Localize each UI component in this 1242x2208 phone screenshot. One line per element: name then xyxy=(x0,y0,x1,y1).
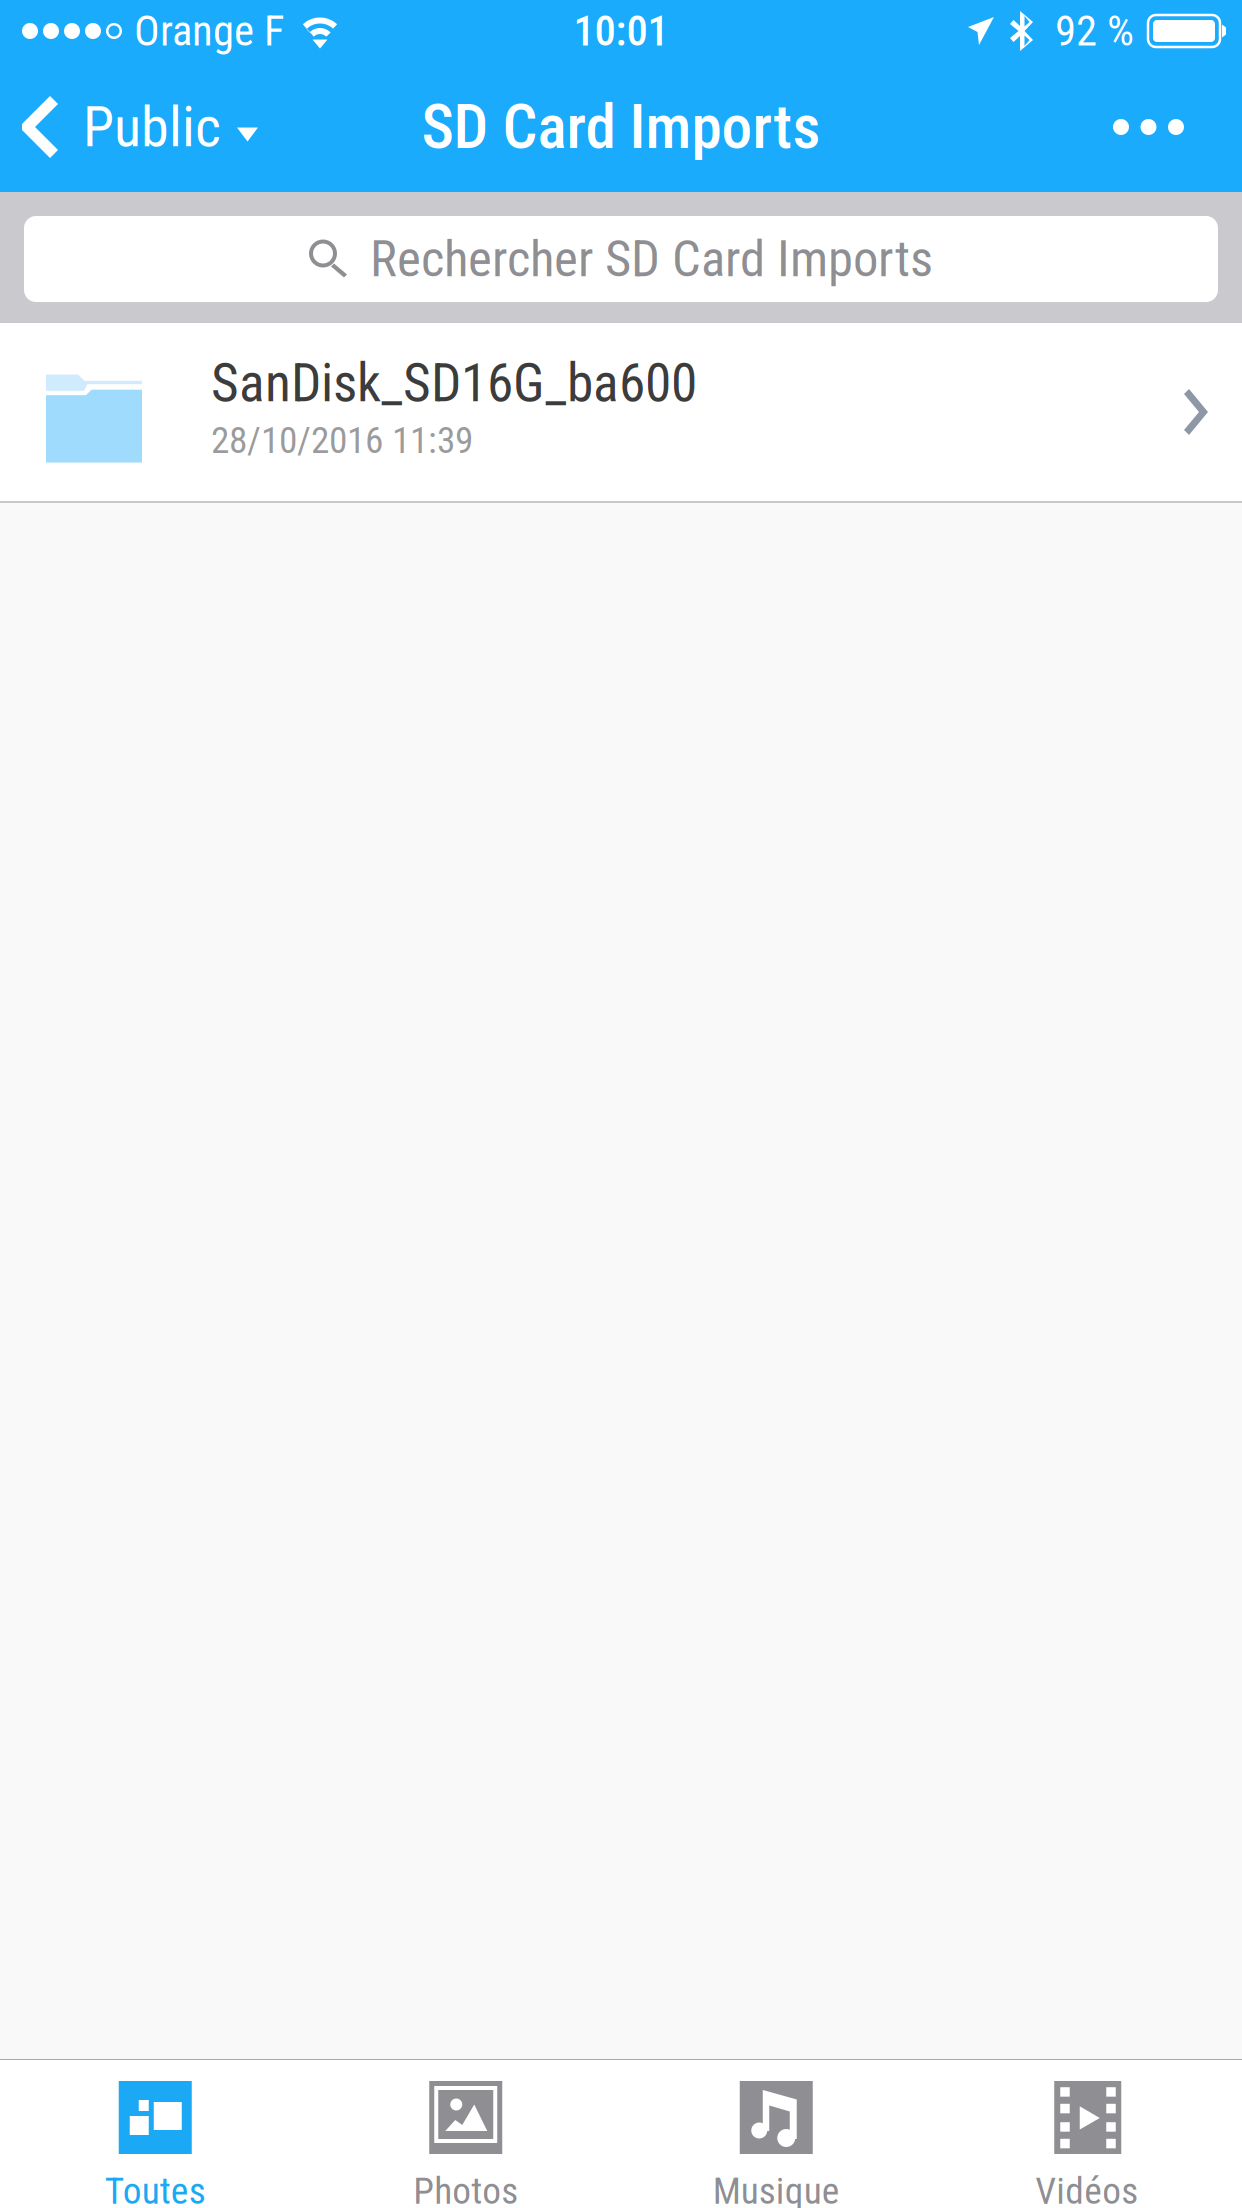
staticText: Photos xyxy=(413,2169,518,2208)
staticText: Vidéos xyxy=(1035,2169,1138,2208)
staticText: SanDisk_SD16G_ba600 xyxy=(211,352,697,414)
button[interactable]: Musique xyxy=(621,2060,931,2208)
staticText: Toutes xyxy=(105,2169,206,2208)
button[interactable]: More options xyxy=(1083,62,1242,192)
button[interactable]: Toutes xyxy=(0,2060,310,2208)
button[interactable]: Vidéos xyxy=(931,2060,1242,2208)
button[interactable]: Public xyxy=(0,62,274,192)
staticText: 10:01 xyxy=(573,6,668,56)
staticText: Musique xyxy=(713,2169,840,2208)
staticText: SD Card Imports xyxy=(421,91,820,163)
staticText: Rechercher SD Card Imports xyxy=(370,229,933,289)
staticText: 28/10/2016 11:39 xyxy=(211,418,473,462)
staticText: Orange F xyxy=(134,6,285,56)
button[interactable]: SanDisk_SD16G_ba600 xyxy=(0,323,1242,501)
button[interactable]: Photos xyxy=(310,2060,621,2208)
staticText: 92 % xyxy=(1055,6,1134,56)
button[interactable]: Rechercher SD Card Imports xyxy=(0,192,1242,322)
staticText: Public xyxy=(83,94,221,160)
